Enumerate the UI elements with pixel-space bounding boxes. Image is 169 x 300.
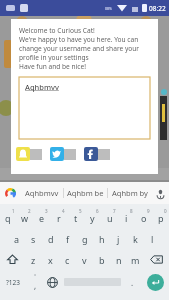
button[interactable]: a (8, 228, 25, 249)
button[interactable]: z (25, 249, 42, 270)
staticText: x (48, 254, 53, 266)
button[interactable]: Period (124, 270, 141, 294)
button[interactable]: e (33, 207, 50, 228)
button[interactable]: i (118, 207, 135, 228)
staticText: 1 (12, 208, 15, 214)
staticText: 2 (28, 208, 31, 214)
button[interactable]: p (152, 207, 169, 228)
button[interactable]: Space (64, 270, 121, 294)
staticText: y (90, 212, 95, 224)
staticText: z (31, 254, 36, 266)
staticText: 4 (62, 208, 65, 214)
staticText: r (57, 212, 61, 224)
staticText: d (48, 233, 54, 245)
button[interactable]: o (135, 207, 152, 228)
staticText: change your username and share your (19, 44, 140, 53)
button[interactable]: Backspace (144, 249, 169, 270)
staticText: . (131, 277, 134, 288)
button[interactable]: s (25, 228, 42, 249)
staticText: q (5, 212, 11, 224)
staticText: j (117, 233, 120, 245)
staticText: 3 (45, 208, 48, 214)
button[interactable]: j (110, 228, 127, 249)
button[interactable]: d (42, 228, 59, 249)
button[interactable]: w (16, 207, 33, 228)
button[interactable]: Aqhbm by (108, 182, 151, 204)
button[interactable]: Aqhbm be (64, 182, 107, 204)
button[interactable]: q (0, 207, 16, 228)
staticText: ?123 (6, 278, 20, 287)
staticText: Aqhbmvv (25, 188, 59, 198)
staticText: u (107, 212, 113, 224)
button[interactable]: Share on Facebook (84, 147, 110, 161)
staticText: Aqhbm be (67, 188, 104, 198)
button[interactable]: Google (0, 182, 20, 204)
staticText: Welcome to Curious Cat! (19, 26, 95, 35)
staticText: 7 (113, 208, 116, 214)
staticText: w (21, 212, 29, 224)
staticText: i (125, 212, 128, 224)
button[interactable]: v (76, 249, 93, 270)
staticText: c (65, 254, 70, 266)
button[interactable]: x (42, 249, 59, 270)
button[interactable]: r (50, 207, 67, 228)
staticText: 08% (105, 6, 112, 11)
button[interactable]: Voice input (151, 182, 169, 204)
button[interactable]: u (101, 207, 118, 228)
staticText: Aqhbm by (112, 188, 148, 198)
staticText: ° (34, 273, 37, 280)
staticText: a (14, 233, 20, 245)
button[interactable]: Share on Twitter (50, 147, 76, 161)
staticText: , (34, 280, 37, 291)
button[interactable]: k (127, 228, 144, 249)
staticText: 9 (147, 208, 150, 214)
button[interactable]: Change language (44, 270, 61, 294)
staticText: v (82, 254, 87, 266)
staticText: m (131, 254, 140, 266)
button[interactable]: c (59, 249, 76, 270)
button[interactable]: t (67, 207, 84, 228)
button[interactable]: ?123 (0, 270, 26, 294)
staticText: o (141, 212, 147, 224)
button[interactable]: Aqhbmvv (20, 182, 63, 204)
staticText: p (158, 212, 164, 224)
staticText: 6 (96, 208, 99, 214)
staticText: e (39, 212, 45, 224)
staticText: 08:22 (149, 4, 166, 13)
button[interactable]: Enter (141, 270, 169, 294)
staticText: g (82, 233, 88, 245)
button[interactable]: g (76, 228, 93, 249)
staticText: 5 (79, 208, 82, 214)
button[interactable]: Comma (26, 270, 44, 294)
staticText: n (116, 254, 122, 266)
staticText: 0 (164, 208, 167, 214)
staticText: f (66, 233, 70, 245)
staticText: s (31, 233, 36, 245)
staticText: Aqhbmvv (25, 82, 59, 92)
staticText: l (151, 233, 154, 245)
button[interactable]: m (127, 249, 144, 270)
button[interactable]: n (110, 249, 127, 270)
button[interactable]: f (59, 228, 76, 249)
button[interactable]: Shift (0, 249, 25, 270)
staticText: k (133, 233, 138, 245)
button[interactable]: b (93, 249, 110, 270)
button[interactable]: l (144, 228, 161, 249)
button[interactable]: Share on Snapchat (16, 147, 42, 161)
button[interactable]: Aqhbmvv (19, 77, 150, 139)
staticText: Have fun and be nice! (19, 62, 86, 71)
staticText: t (74, 212, 78, 224)
staticText: b (99, 254, 105, 266)
button[interactable]: y (84, 207, 101, 228)
staticText: h (99, 233, 105, 245)
staticText: profile in your settings (19, 53, 89, 62)
staticText: We're happy to have you here. You can (19, 35, 139, 44)
staticText: 8 (130, 208, 133, 214)
button[interactable]: h (93, 228, 110, 249)
